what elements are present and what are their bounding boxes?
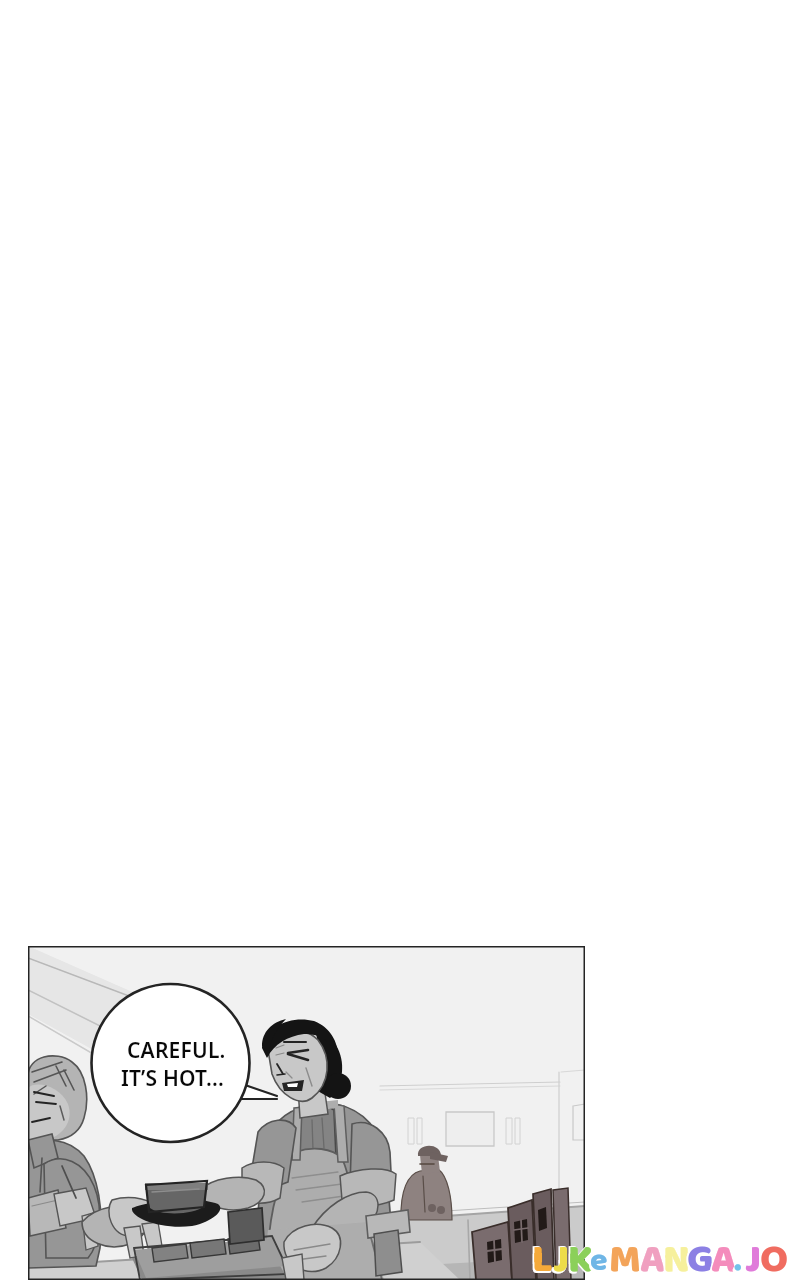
button[interactable] bbox=[0, 0, 800, 1280]
